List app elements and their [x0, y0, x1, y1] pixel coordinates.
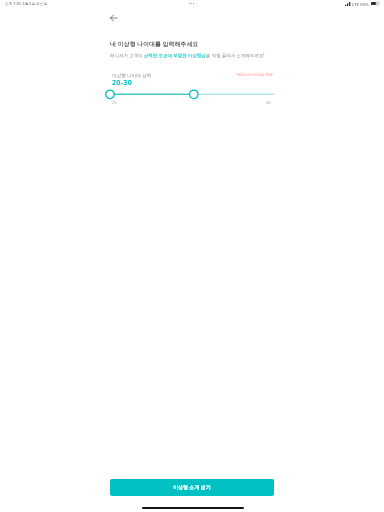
- staticText: 20: [112, 100, 117, 105]
- staticText: *최대 나이 간격은 10세: [236, 72, 273, 77]
- staticText: 오후 7:50 6월 6일 금요일: [5, 1, 48, 6]
- staticText: 이상형 소개 받기: [173, 484, 211, 491]
- button[interactable]: Age range slider: [104, 87, 282, 106]
- staticText: 40: [266, 100, 271, 105]
- staticText: 매니저가 고객이 선택한 조건에 부합한 이상형님을 직접 골라서 소개해드려요…: [110, 52, 265, 58]
- button[interactable]: 이상형 소개 받기: [110, 479, 274, 496]
- staticText: 내 이상형 나이대를 입력해주세요: [110, 40, 199, 48]
- staticText: 20-30: [112, 78, 133, 88]
- staticText: LTE 69%: [352, 1, 369, 7]
- staticText: 이상형 나이대 선택: [112, 72, 152, 78]
- button[interactable]: Back: [104, 8, 123, 27]
